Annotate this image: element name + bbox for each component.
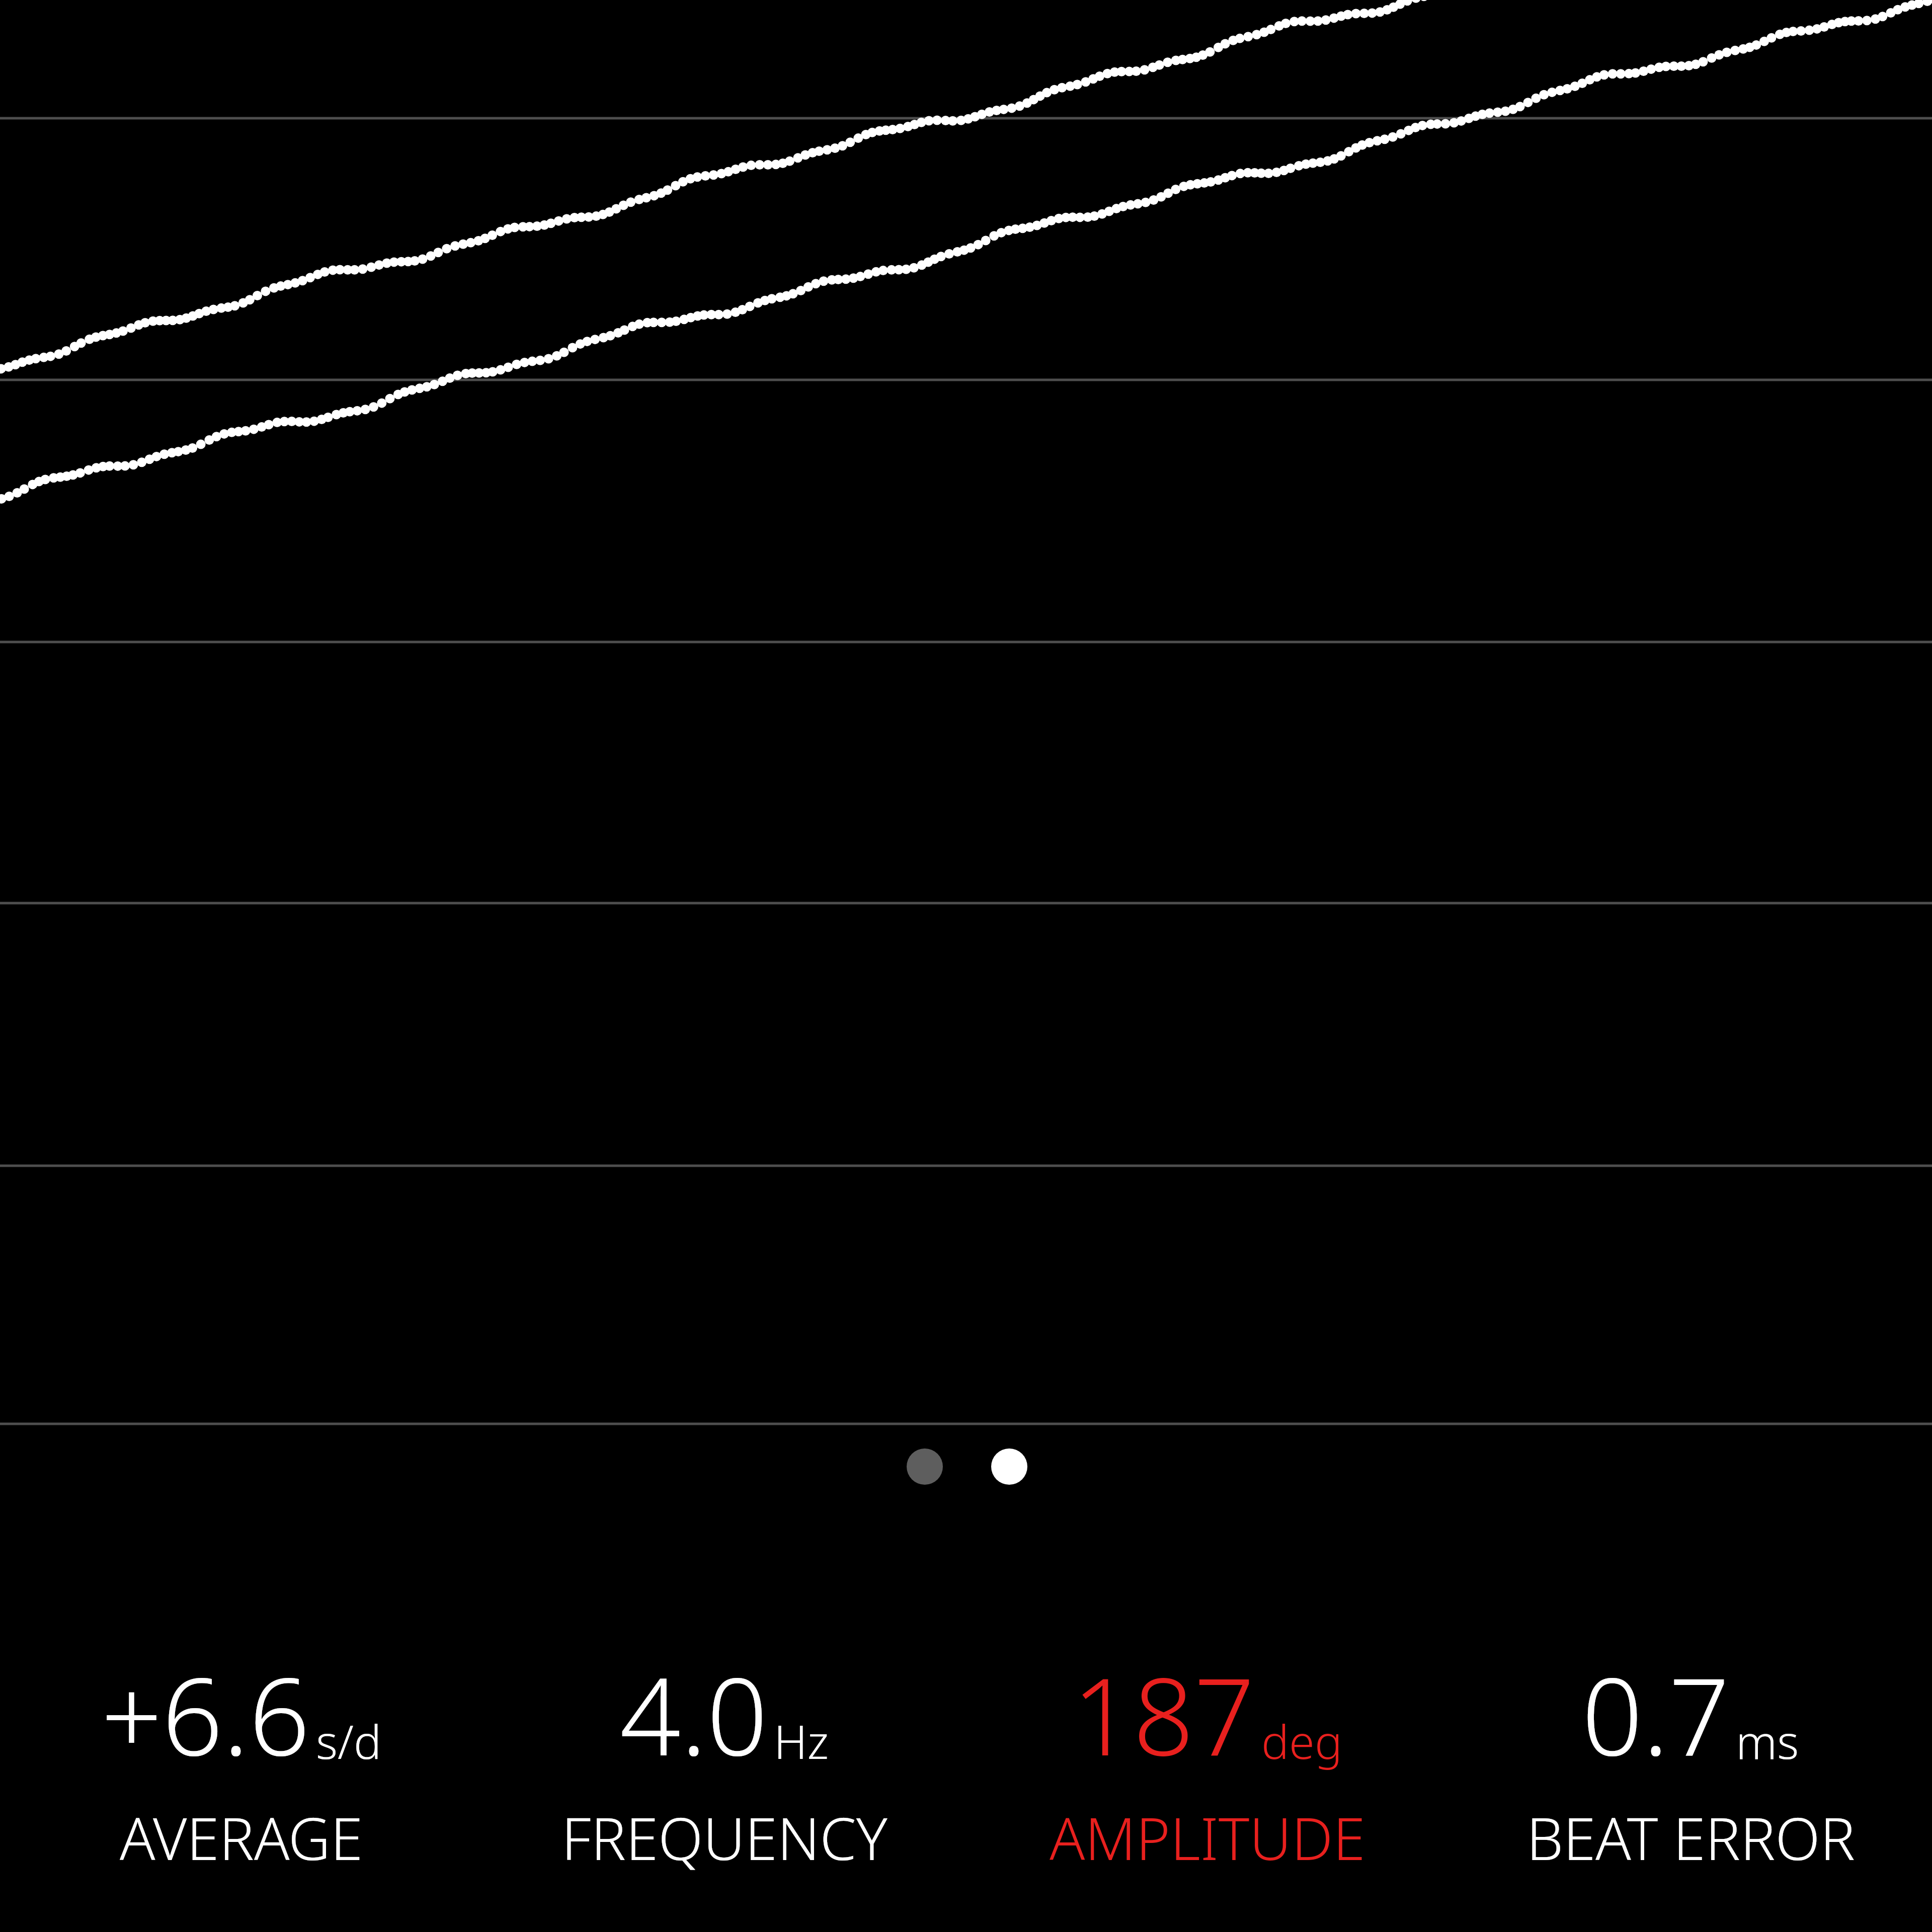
staticText: 187 <box>1072 1641 1255 1787</box>
staticText: s/d <box>316 1710 382 1773</box>
staticText: 0.7 <box>1582 1641 1730 1787</box>
staticText: AMPLITUDE <box>1050 1798 1365 1877</box>
staticText: 4.0 <box>620 1641 768 1787</box>
staticText: BEAT ERROR <box>1526 1798 1855 1877</box>
button[interactable]: 4.0 <box>483 1641 966 1877</box>
button[interactable]: 0.7 <box>1449 1641 1932 1877</box>
button[interactable]: 187 <box>966 1641 1449 1877</box>
button[interactable]: +6.6 <box>0 1641 483 1877</box>
staticText: Hz <box>774 1710 829 1773</box>
staticText: deg <box>1261 1710 1343 1773</box>
staticText: ms <box>1736 1710 1799 1773</box>
button[interactable]: Page 2 of 2 <box>907 1448 1027 1485</box>
staticText: +6.6 <box>101 1641 310 1787</box>
button[interactable]: Timing trace graph <box>0 0 1932 1504</box>
staticText: FREQUENCY <box>561 1798 888 1877</box>
staticText: AVERAGE <box>120 1798 363 1877</box>
